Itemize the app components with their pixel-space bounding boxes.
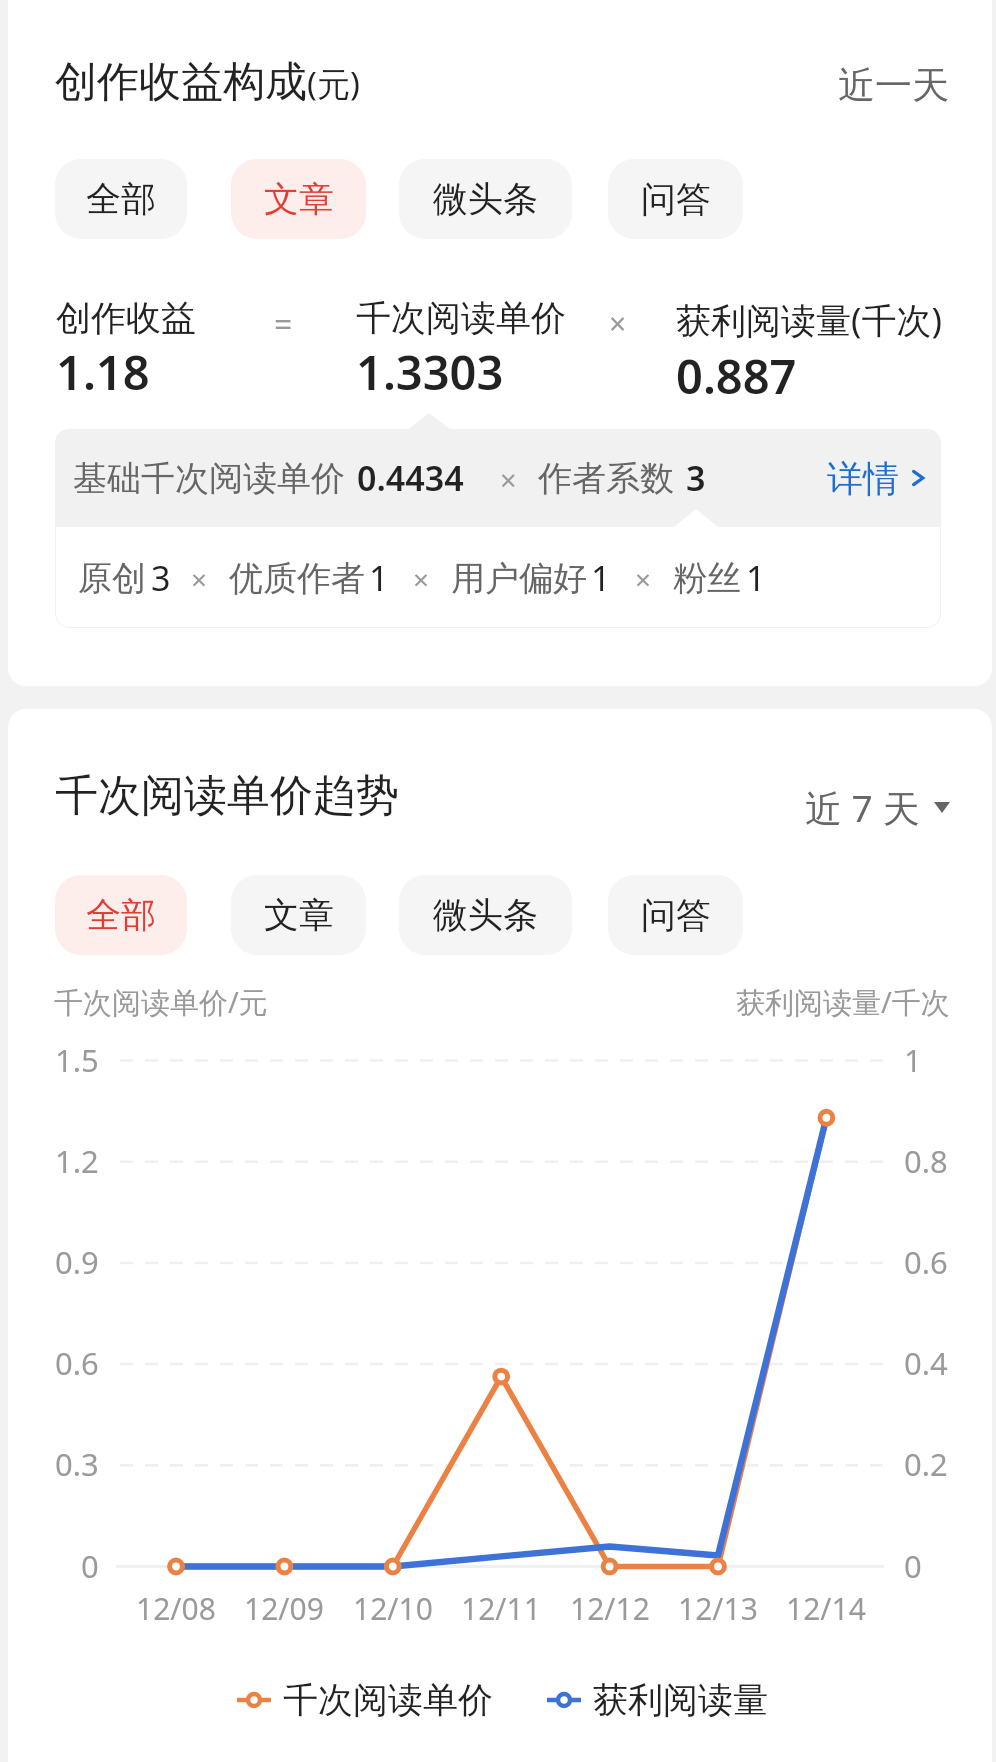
staticText: 千次阅读单价: [356, 296, 566, 340]
button[interactable]: 全部: [55, 875, 187, 955]
staticText: 0.9: [55, 1241, 99, 1283]
staticText: 1.2: [55, 1140, 99, 1182]
staticText: 0.6: [55, 1342, 99, 1384]
staticText: 千次阅读单价趋势: [55, 769, 399, 823]
staticText: ×: [609, 303, 627, 344]
staticText: 微头条: [433, 893, 538, 937]
button[interactable]: 近 7 天: [805, 782, 950, 833]
staticText: 微头条: [433, 177, 538, 221]
staticText: 作者系数: [538, 457, 674, 500]
staticText: 1: [746, 555, 766, 601]
staticText: 全部: [86, 177, 156, 221]
staticText: 12/13: [678, 1588, 758, 1629]
button[interactable]: 全部: [55, 159, 187, 239]
staticText: 近 7 天: [805, 782, 920, 833]
staticText: 12/11: [461, 1588, 541, 1629]
staticText: 1: [369, 555, 389, 601]
staticText: 1.3303: [356, 340, 504, 404]
staticText: 12/09: [244, 1588, 324, 1629]
staticText: 3: [686, 455, 706, 501]
staticText: =: [274, 302, 293, 346]
staticText: 优质作者: [229, 557, 365, 600]
staticText: 获利阅读量: [593, 1678, 768, 1722]
staticText: 基础千次阅读单价: [73, 457, 345, 500]
staticText: 1: [591, 555, 611, 601]
staticText: ×: [635, 560, 652, 598]
staticText: 0.2: [904, 1443, 948, 1485]
staticText: 粉丝: [673, 557, 741, 600]
staticText: ×: [413, 560, 430, 598]
staticText: 获利阅读量(千次): [676, 296, 943, 344]
staticText: 1.18: [56, 340, 150, 404]
staticText: 0.4434: [357, 455, 464, 501]
staticText: 问答: [641, 177, 711, 221]
staticText: 12/14: [786, 1588, 866, 1629]
staticText: 全部: [86, 893, 156, 937]
staticText: 文章: [264, 893, 334, 937]
button[interactable]: 问答: [608, 875, 743, 955]
staticText: 12/12: [570, 1588, 650, 1629]
staticText: 3: [151, 555, 171, 601]
staticText: 用户偏好: [451, 557, 587, 600]
button[interactable]: 微头条: [399, 875, 572, 955]
staticText: 获利阅读量/千次: [736, 982, 950, 1022]
button[interactable]: 微头条: [399, 159, 572, 239]
button[interactable]: 获利阅读量: [547, 1678, 768, 1722]
staticText: 0.8: [904, 1140, 948, 1182]
staticText: 文章: [264, 177, 334, 221]
staticText: 千次阅读单价: [283, 1678, 493, 1722]
staticText: 1: [904, 1039, 922, 1081]
staticText: 千次阅读单价/元: [54, 982, 268, 1022]
staticText: 0.6: [904, 1241, 948, 1283]
other: 详情: [907, 467, 929, 489]
staticText: 12/08: [136, 1588, 216, 1629]
staticText: 0.3: [55, 1443, 99, 1485]
staticText: 12/10: [353, 1588, 433, 1629]
button[interactable]: 问答: [608, 159, 743, 239]
staticText: 0.4: [904, 1342, 948, 1384]
staticText: 1.5: [55, 1039, 99, 1081]
staticText: ×: [500, 460, 517, 499]
staticText: 原创: [78, 557, 146, 600]
staticText: 0: [81, 1545, 99, 1587]
staticText: 0.887: [676, 344, 797, 408]
button[interactable]: 文章: [231, 159, 366, 239]
staticText: 详情: [827, 456, 899, 501]
button[interactable]: 文章: [231, 875, 366, 955]
staticText: 0: [904, 1545, 922, 1587]
staticText: 问答: [641, 893, 711, 937]
staticText: 创作收益: [56, 296, 196, 340]
button[interactable]: 近一天: [838, 62, 949, 109]
button[interactable]: 基础千次阅读单价: [55, 429, 941, 527]
staticText: 近一天: [838, 62, 949, 109]
staticText: (元): [307, 61, 360, 106]
staticText: 创作收益构成: [55, 56, 307, 109]
staticText: ×: [191, 560, 208, 598]
button[interactable]: 千次阅读单价: [237, 1678, 493, 1722]
